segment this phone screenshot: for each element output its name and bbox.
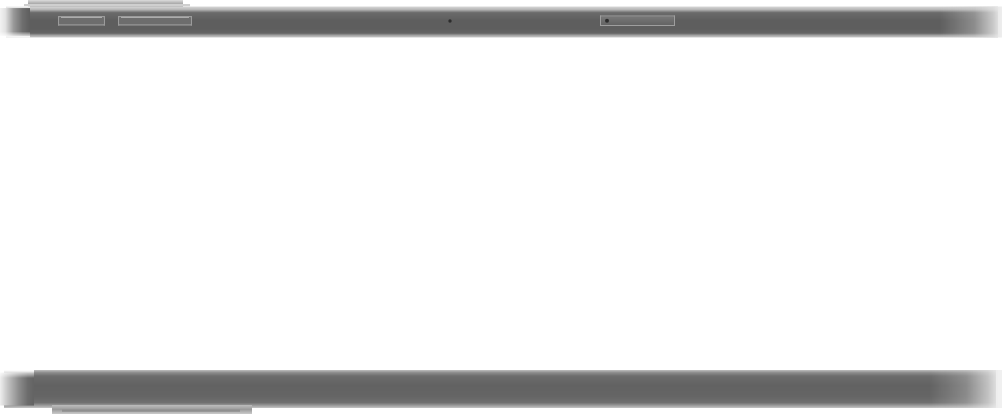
button[interactable]: Tablet side profile product photo [0, 0, 1002, 417]
